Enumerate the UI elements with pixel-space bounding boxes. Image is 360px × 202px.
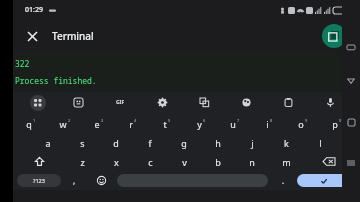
staticText: x bbox=[114, 156, 119, 168]
button[interactable]: Voice input bbox=[309, 92, 351, 113]
staticText: z bbox=[80, 156, 85, 168]
button[interactable]: w bbox=[48, 114, 82, 133]
button[interactable]: g bbox=[167, 133, 201, 152]
button[interactable]: u bbox=[218, 114, 252, 133]
button[interactable]: Shift bbox=[14, 152, 65, 171]
staticText: Terminal bbox=[52, 29, 94, 43]
staticText: 3 bbox=[101, 118, 104, 123]
button[interactable]: e bbox=[82, 114, 116, 133]
button[interactable]: Home bbox=[343, 114, 359, 130]
staticText: j bbox=[251, 137, 254, 149]
button[interactable]: o bbox=[286, 114, 320, 133]
staticText: c bbox=[148, 156, 153, 168]
staticText: g bbox=[181, 137, 187, 149]
staticText: Process finished. bbox=[15, 75, 97, 86]
staticText: v bbox=[182, 156, 187, 168]
staticText: n bbox=[249, 156, 255, 168]
staticText: f bbox=[148, 137, 152, 149]
staticText: u bbox=[230, 118, 236, 130]
staticText: e bbox=[94, 118, 100, 130]
staticText: 9 bbox=[305, 118, 308, 123]
staticText: q bbox=[26, 118, 32, 130]
button[interactable]: Back bbox=[343, 73, 359, 89]
staticText: b bbox=[215, 156, 221, 168]
button[interactable]: Hide keyboard bbox=[343, 41, 359, 57]
button[interactable]: Recent apps bbox=[343, 155, 359, 171]
button[interactable]: k bbox=[269, 133, 303, 152]
button[interactable]: x bbox=[99, 152, 133, 171]
button[interactable]: a bbox=[31, 133, 65, 152]
button[interactable]: Emoji bbox=[88, 171, 115, 190]
staticText: 01:29 bbox=[25, 5, 43, 15]
button[interactable]: Clipboard bbox=[267, 92, 309, 113]
button[interactable]: Stickers bbox=[58, 92, 99, 113]
button[interactable]: s bbox=[65, 133, 99, 152]
staticText: m bbox=[282, 156, 291, 168]
button[interactable]: i bbox=[252, 114, 286, 133]
button[interactable]: n bbox=[235, 152, 269, 171]
staticText: r bbox=[129, 118, 133, 130]
staticText: l bbox=[319, 137, 322, 149]
button[interactable]: t bbox=[150, 114, 184, 133]
staticText: 4 bbox=[134, 118, 137, 123]
button[interactable]: y bbox=[184, 114, 218, 133]
staticText: i bbox=[266, 118, 269, 130]
staticText: 6 bbox=[203, 118, 206, 123]
staticText: GIF bbox=[116, 99, 125, 106]
button[interactable]: p bbox=[320, 114, 354, 133]
button[interactable]: Themes bbox=[225, 92, 267, 113]
button[interactable]: New session bbox=[322, 24, 346, 48]
staticText: , bbox=[73, 175, 76, 186]
staticText: a bbox=[45, 137, 51, 149]
button[interactable]: Settings bbox=[141, 92, 183, 113]
button[interactable]: c bbox=[133, 152, 167, 171]
staticText: s bbox=[80, 137, 85, 149]
staticText: p bbox=[332, 118, 338, 130]
button[interactable]: h bbox=[201, 133, 235, 152]
button[interactable]: q bbox=[14, 114, 48, 133]
button[interactable]: Apps bbox=[17, 92, 58, 113]
button[interactable]: b bbox=[201, 152, 235, 171]
staticText: 7 bbox=[237, 118, 240, 123]
button[interactable]: m bbox=[269, 152, 303, 171]
staticText: 8 bbox=[270, 118, 273, 123]
button[interactable]: Backspace bbox=[303, 152, 354, 171]
staticText: . bbox=[282, 175, 285, 186]
button[interactable]: Close bbox=[21, 25, 43, 47]
button[interactable]: Translate bbox=[183, 92, 225, 113]
button[interactable]: ?123 bbox=[17, 174, 61, 187]
staticText: h bbox=[215, 137, 221, 149]
staticText: ?123 bbox=[33, 177, 45, 184]
button[interactable]: Space bbox=[117, 174, 268, 187]
button[interactable]: Enter bbox=[297, 174, 351, 187]
button[interactable]: f bbox=[133, 133, 167, 152]
staticText: k bbox=[284, 137, 289, 149]
button[interactable]: , bbox=[61, 171, 88, 190]
staticText: y bbox=[197, 118, 202, 130]
staticText: t bbox=[163, 118, 167, 130]
staticText: 2 bbox=[68, 118, 71, 123]
button[interactable]: r bbox=[116, 114, 150, 133]
button[interactable]: v bbox=[167, 152, 201, 171]
button[interactable]: GIF bbox=[99, 92, 141, 113]
staticText: 322 bbox=[15, 58, 30, 69]
staticText: 5 bbox=[168, 118, 171, 123]
staticText: 0 bbox=[339, 118, 342, 123]
button[interactable]: l bbox=[303, 133, 337, 152]
staticText: o bbox=[298, 118, 304, 130]
button[interactable]: . bbox=[270, 171, 297, 190]
button[interactable]: d bbox=[99, 133, 133, 152]
staticText: d bbox=[113, 137, 119, 149]
button[interactable]: j bbox=[235, 133, 269, 152]
staticText: w bbox=[59, 118, 67, 130]
staticText: 1 bbox=[33, 118, 36, 123]
button[interactable]: z bbox=[65, 152, 99, 171]
